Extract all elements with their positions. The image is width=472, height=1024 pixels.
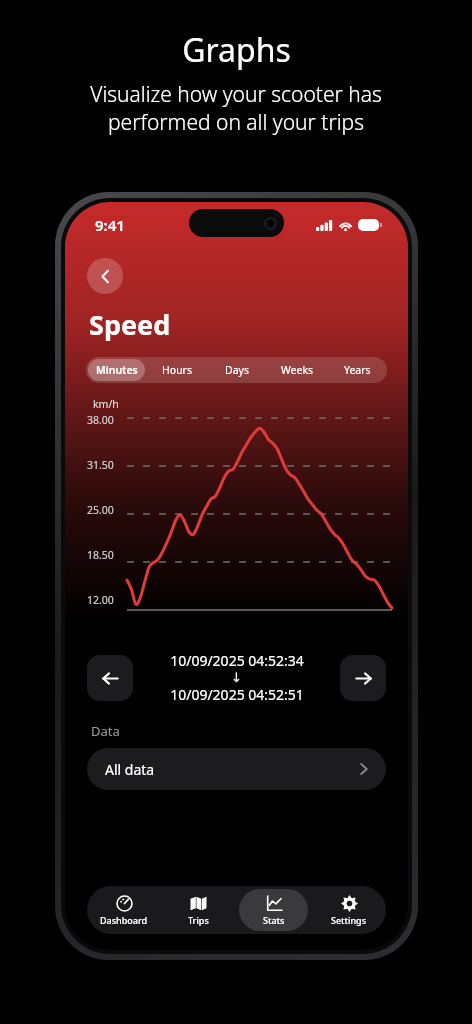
staticText: 9:41 [95,215,125,235]
staticText: Data [91,722,120,740]
staticText: ↓ [231,670,242,685]
button[interactable]: Dashboard [90,889,158,931]
button[interactable]: Settings [314,889,383,931]
staticText: Dashboard [100,914,148,926]
staticText: All data [105,760,155,779]
staticText: 10/09/2025 04:52:51 [170,685,304,704]
staticText: Stats [263,914,285,926]
button[interactable]: Weeks [269,359,325,381]
staticText: Years [344,363,371,377]
staticText: Visualize how your scooter has performed… [90,80,382,136]
staticText: Days [225,363,249,377]
staticText: 38.00 [87,413,114,427]
staticText: Trips [188,914,209,926]
staticText: 31.50 [87,458,114,472]
button[interactable]: Hours [149,359,205,381]
staticText: Weeks [281,363,314,377]
button[interactable]: Back [87,258,123,294]
staticText: 18.50 [87,548,114,562]
button[interactable]: Previous [87,655,133,701]
staticText: 12.00 [87,593,114,605]
button[interactable]: Trips [164,889,233,931]
button[interactable]: Next [340,655,386,701]
button[interactable]: Days [209,359,265,381]
button[interactable]: Stats [239,889,308,931]
button[interactable]: Minutes [88,359,145,381]
staticText: Hours [162,363,192,377]
staticText: 25.00 [87,503,114,517]
staticText: Speed [89,306,171,343]
staticText: km/h [93,397,119,411]
button[interactable]: Years [329,359,385,381]
staticText: Minutes [96,363,138,377]
staticText: Graphs [182,28,291,72]
staticText: Settings [331,914,367,926]
staticText: 10/09/2025 04:52:34 [170,651,304,670]
button[interactable]: All data [87,748,386,790]
